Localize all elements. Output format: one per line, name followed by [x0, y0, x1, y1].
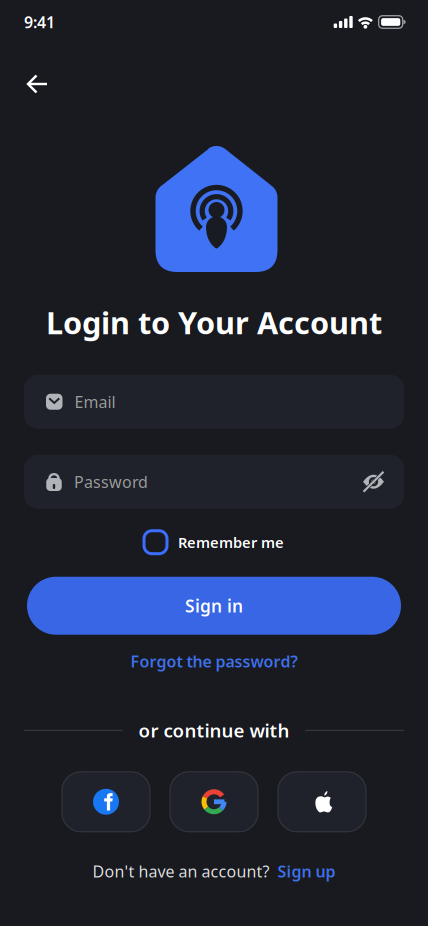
- button[interactable]: Password: [24, 455, 404, 509]
- button[interactable]: Remember me: [144, 531, 284, 554]
- button[interactable]: Continue with Facebook: [62, 772, 150, 832]
- button[interactable]: Continue with Apple: [278, 772, 366, 832]
- staticText: Forgot the password?: [130, 651, 297, 672]
- button[interactable]: Continue with Google: [170, 772, 258, 832]
- staticText: Remember me: [178, 532, 284, 552]
- staticText: Sign up: [277, 861, 335, 882]
- button[interactable]: Forgot the password?: [130, 651, 297, 672]
- button[interactable]: Back: [28, 75, 47, 93]
- button[interactable]: Show password: [363, 472, 384, 491]
- button[interactable]: Sign up: [277, 861, 335, 882]
- staticText: Sign in: [185, 594, 243, 617]
- button[interactable]: Email: [24, 375, 404, 429]
- staticText: Don't have an account?: [92, 861, 269, 882]
- staticText: or continue with: [138, 718, 289, 743]
- staticText: Email: [74, 391, 115, 412]
- staticText: 9:41: [24, 11, 55, 33]
- staticText: Password: [74, 471, 148, 492]
- button[interactable]: Sign in: [27, 577, 401, 635]
- staticText: Login to Your Account: [46, 302, 382, 343]
